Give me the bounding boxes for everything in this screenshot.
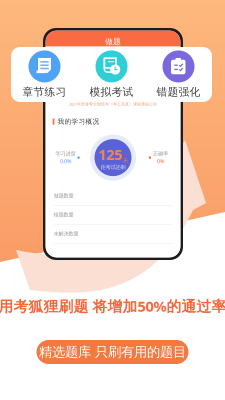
staticText: 错题强化: [156, 85, 200, 98]
staticText: 未解决数量: [54, 230, 79, 237]
staticText: 精选题库 只刷有用的题目: [39, 344, 186, 360]
button[interactable]: 错题强化: [145, 47, 212, 102]
staticText: 0%: [157, 158, 164, 165]
button[interactable]: 章节练习: [11, 47, 78, 102]
button[interactable]: 错题数量: [46, 206, 180, 225]
button[interactable]: 模拟考试: [78, 47, 145, 102]
staticText: 做题: [105, 37, 121, 46]
staticText: 做题数量: [54, 192, 74, 199]
staticText: 0.0%: [60, 158, 71, 165]
button[interactable]: 精选题库 只刷有用的题目: [36, 340, 188, 364]
staticText: 我的学习概况: [57, 117, 99, 126]
staticText: 学习进度: [55, 150, 75, 157]
staticText: 125: [98, 145, 122, 164]
button[interactable]: 做题数量: [46, 187, 180, 206]
staticText: 错题数量: [54, 211, 74, 218]
staticText: 距考试还剩: [100, 164, 125, 171]
staticText: 天: [123, 157, 128, 164]
staticText: 2021年度春季全国统考《考公充真》课程通知公告: [69, 101, 157, 107]
staticText: 正确率: [153, 150, 168, 157]
button[interactable]: 未解决数量: [46, 225, 180, 244]
staticText: 用考狐狸刷题 将增加50%的通过率: [0, 296, 225, 316]
staticText: 模拟考试: [89, 85, 133, 98]
staticText: 章节练习: [22, 85, 66, 98]
